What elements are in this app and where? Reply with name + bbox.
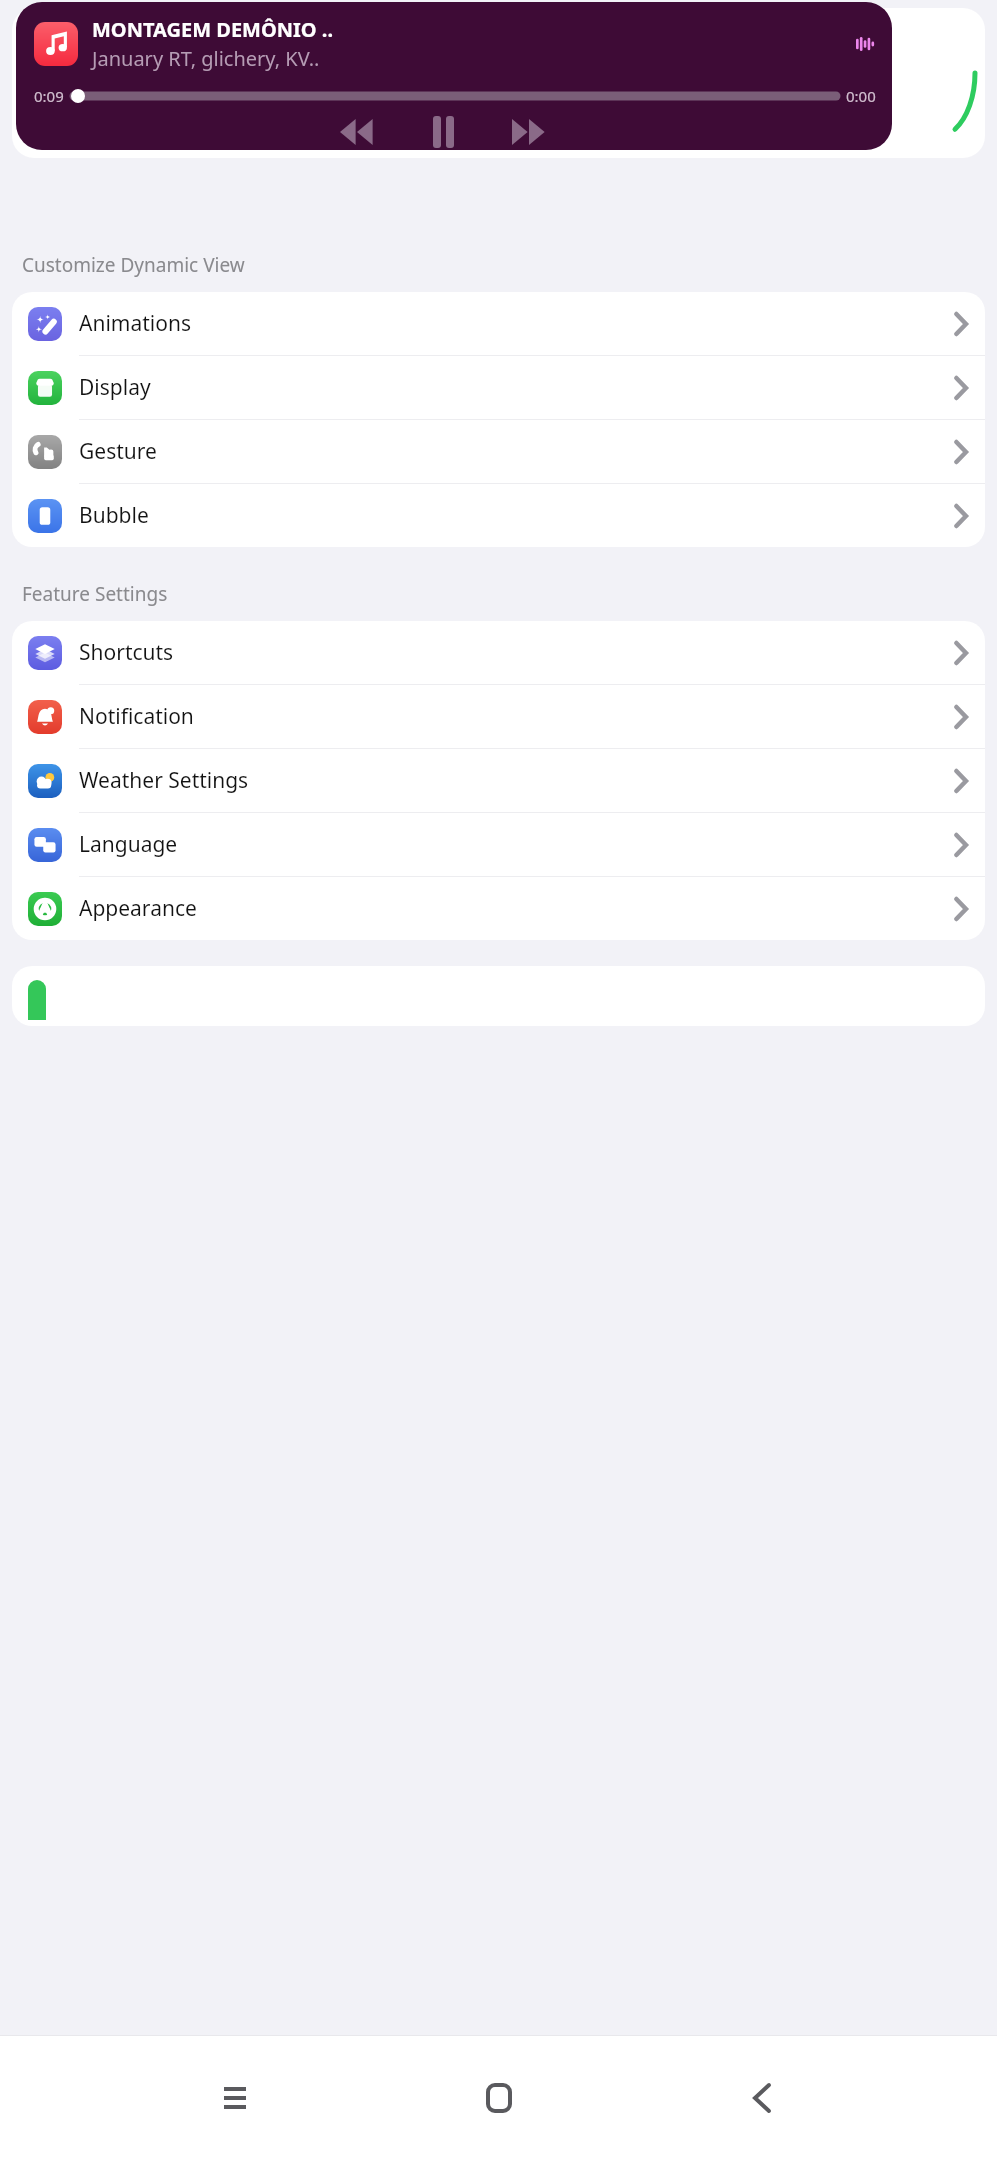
button[interactable]: Shortcuts [12, 621, 985, 684]
staticText: Display [79, 373, 151, 402]
button[interactable]: Gesture [12, 420, 985, 483]
staticText: MONTAGEM DEMÔNIO .. [92, 16, 334, 43]
staticText: Notification [79, 702, 194, 731]
staticText: 0:09 [34, 86, 64, 106]
button[interactable]: Language [12, 813, 985, 876]
staticText: Appearance [79, 894, 197, 923]
staticText: Shortcuts [79, 638, 174, 667]
button[interactable]: Back [734, 2070, 790, 2126]
button[interactable]: Bubble [12, 484, 985, 547]
button[interactable]: Animations [12, 292, 985, 355]
button[interactable]: Next [506, 114, 552, 150]
staticText: Language [79, 830, 178, 859]
staticText: Weather Settings [79, 766, 249, 795]
staticText: Feature Settings [22, 581, 168, 607]
staticText: Customize Dynamic View [22, 252, 245, 278]
staticText: Bubble [79, 501, 149, 530]
staticText: 0:00 [846, 86, 876, 106]
button[interactable]: Weather Settings [12, 749, 985, 812]
staticText: January RT, glichery, KV.. [92, 45, 320, 72]
button[interactable]: Recents [207, 2070, 263, 2126]
button[interactable]: Display [12, 356, 985, 419]
staticText: Animations [79, 309, 191, 338]
button[interactable]: Pause [420, 114, 466, 150]
button[interactable]: MONTAGEM DEMÔNIO .. [16, 2, 892, 150]
button[interactable]: Home [471, 2070, 527, 2126]
button[interactable]: Appearance [12, 877, 985, 940]
button[interactable]: Notification [12, 685, 985, 748]
staticText: Gesture [79, 437, 157, 466]
button[interactable]: Previous [334, 114, 380, 150]
